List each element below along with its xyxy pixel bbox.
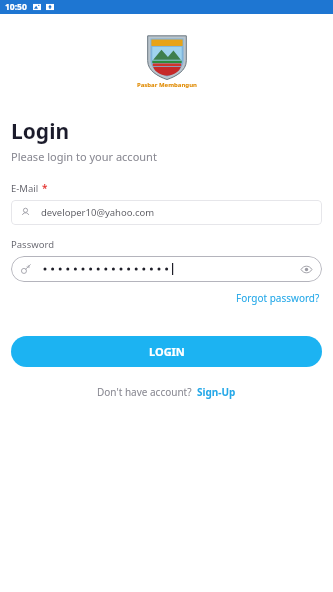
button[interactable]: Show password xyxy=(11,256,322,282)
staticText: developer10@yahoo.com xyxy=(41,206,155,219)
staticText: Login xyxy=(11,117,70,146)
staticText: Sign-Up xyxy=(197,385,236,399)
button[interactable]: developer10@yahoo.com xyxy=(11,200,322,225)
staticText: Please login to your account xyxy=(11,149,157,164)
button[interactable]: Sign-Up xyxy=(196,384,237,400)
staticText: * xyxy=(42,181,48,195)
staticText: Pasbar Membangun xyxy=(137,81,197,89)
staticText: 10:50 xyxy=(5,1,27,13)
button[interactable]: LOGIN xyxy=(11,336,322,367)
staticText: LOGIN xyxy=(149,344,185,359)
button[interactable]: Show password xyxy=(298,261,315,278)
staticText: Password xyxy=(11,238,54,251)
button[interactable]: Forgot password? xyxy=(234,289,322,307)
staticText: E-Mail xyxy=(11,182,39,195)
staticText: Don't have account? xyxy=(97,385,192,399)
staticText: Forgot password? xyxy=(236,291,320,305)
